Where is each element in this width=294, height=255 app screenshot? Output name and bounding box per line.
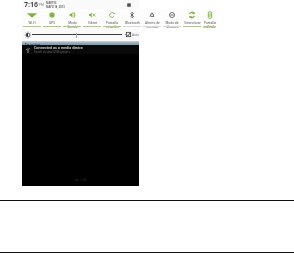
staticText: 7:16 — [24, 0, 38, 9]
staticText: Ahorro de — [145, 21, 160, 25]
staticText: Wi-Fi — [28, 21, 36, 25]
staticText: Bluetooth — [125, 21, 140, 25]
staticText: Sincronizar — [184, 21, 201, 25]
staticText: Modo — [68, 21, 77, 25]
staticText: Pantalla — [106, 21, 118, 25]
staticText: energía — [146, 25, 158, 28]
button[interactable]: Modo — [62, 9, 82, 28]
staticText: Connected as a media device — [34, 45, 83, 50]
staticText: Vibrar — [88, 21, 97, 25]
staticText: Pantalla — [204, 21, 216, 25]
button[interactable]: Auto — [126, 32, 140, 37]
staticText: bloqueo — [166, 25, 179, 28]
button[interactable]: Pantalla — [202, 9, 217, 28]
button[interactable]: Wi-Fi — [22, 9, 42, 28]
button[interactable] — [32, 34, 122, 35]
staticText: Auto — [132, 33, 140, 37]
button[interactable]: Pantalla — [102, 9, 122, 28]
button[interactable]: Modo de — [162, 9, 182, 28]
button[interactable]: Connected as a media device — [22, 45, 139, 54]
button[interactable]: Sincronizar — [182, 9, 202, 28]
staticText: GPS — [49, 21, 55, 25]
staticText: En curso — [25, 42, 41, 47]
button[interactable]: Ahorro de — [142, 9, 162, 28]
button[interactable]: GPS — [42, 9, 62, 28]
staticText: Touch to view USB options — [34, 50, 70, 54]
staticText: múltiple — [203, 25, 216, 28]
button[interactable]: Vibrar — [82, 9, 102, 28]
staticText: rotación — [106, 25, 119, 28]
staticText: PM — [39, 3, 44, 7]
staticText: Sonido — [67, 25, 78, 28]
button[interactable]: Settings — [125, 1, 133, 9]
staticText: MAYO 14, 2013 — [46, 5, 65, 9]
button[interactable]: Bluetooth — [122, 9, 142, 28]
staticText: Modo de — [165, 21, 179, 25]
staticText: Aa-1_NE — [75, 178, 87, 182]
staticText: MARTES — [46, 1, 57, 5]
